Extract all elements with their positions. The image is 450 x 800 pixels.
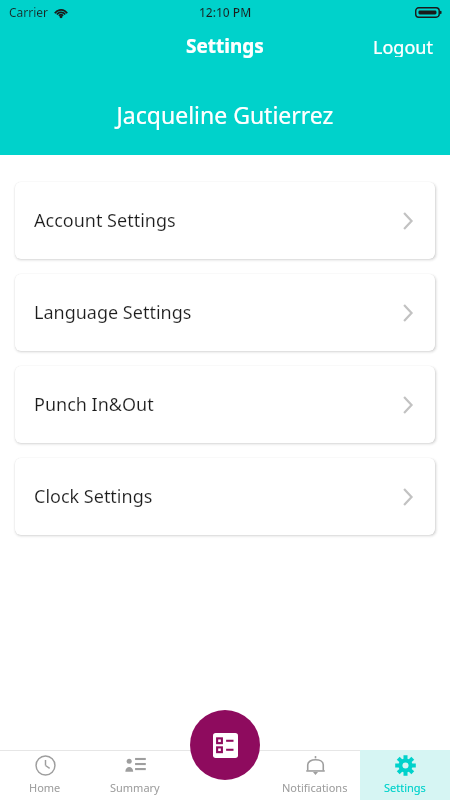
staticText: Language Settings bbox=[34, 300, 192, 325]
staticText: Settings bbox=[186, 33, 264, 59]
button[interactable]: New entry bbox=[190, 710, 260, 780]
button[interactable]: Clock Settings bbox=[15, 458, 435, 535]
button[interactable]: Home bbox=[0, 750, 90, 800]
button[interactable]: Settings bbox=[360, 750, 450, 800]
staticText: Notifications bbox=[282, 780, 348, 795]
button[interactable]: Notifications bbox=[270, 750, 360, 800]
button[interactable]: Logout bbox=[356, 30, 450, 62]
button[interactable]: Language Settings bbox=[15, 274, 435, 351]
staticText: Logout bbox=[373, 35, 433, 57]
staticText: Punch In&Out bbox=[34, 392, 154, 417]
staticText: 12:10 PM bbox=[199, 4, 252, 20]
button[interactable]: Account Settings bbox=[15, 182, 435, 259]
staticText: Home bbox=[29, 780, 61, 795]
staticText: Account Settings bbox=[34, 208, 176, 233]
staticText: Clock Settings bbox=[34, 484, 153, 509]
staticText: Settings bbox=[384, 780, 426, 795]
button[interactable]: Punch In&Out bbox=[15, 366, 435, 443]
staticText: Carrier bbox=[9, 4, 49, 20]
staticText: Jacqueline Gutierrez bbox=[0, 99, 450, 130]
button[interactable]: Summary bbox=[90, 750, 180, 800]
staticText: Summary bbox=[110, 780, 160, 795]
